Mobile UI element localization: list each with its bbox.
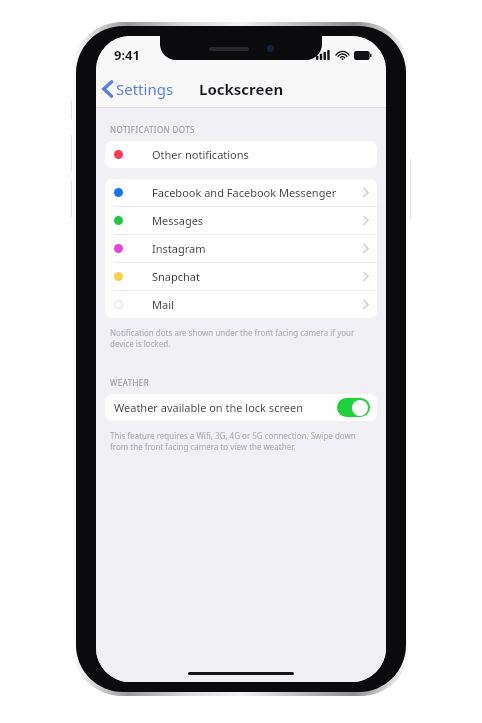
other: Weather toggle, on xyxy=(337,398,370,417)
staticText: Settings xyxy=(116,79,174,99)
button[interactable]: Weather available on the lock screen xyxy=(105,394,377,421)
button[interactable]: Messages xyxy=(105,207,377,234)
button[interactable]: Facebook and Facebook Messenger xyxy=(105,179,377,206)
staticText: Weather available on the lock screen xyxy=(114,400,303,415)
staticText: Instagram xyxy=(152,241,206,256)
staticText: Snapchat xyxy=(152,269,200,284)
staticText: 9:41 xyxy=(114,46,140,64)
staticText: This feature requires a Wifi, 3G, 4G or … xyxy=(110,430,372,452)
button[interactable]: Other notifications xyxy=(105,141,377,168)
staticText: Messages xyxy=(152,213,204,228)
staticText: Notification dots are shown under the fr… xyxy=(110,327,372,349)
staticText: WEATHER xyxy=(110,377,150,388)
button[interactable]: Mail xyxy=(105,291,377,318)
button[interactable]: Instagram xyxy=(105,235,377,262)
button[interactable]: Settings xyxy=(96,75,184,103)
staticText: Facebook and Facebook Messenger xyxy=(152,185,337,200)
staticText: Mail xyxy=(152,297,174,312)
staticText: Other notifications xyxy=(152,147,249,162)
staticText: NOTIFICATION DOTS xyxy=(110,124,195,135)
button[interactable]: Snapchat xyxy=(105,263,377,290)
staticText: Lockscreen xyxy=(199,79,284,99)
